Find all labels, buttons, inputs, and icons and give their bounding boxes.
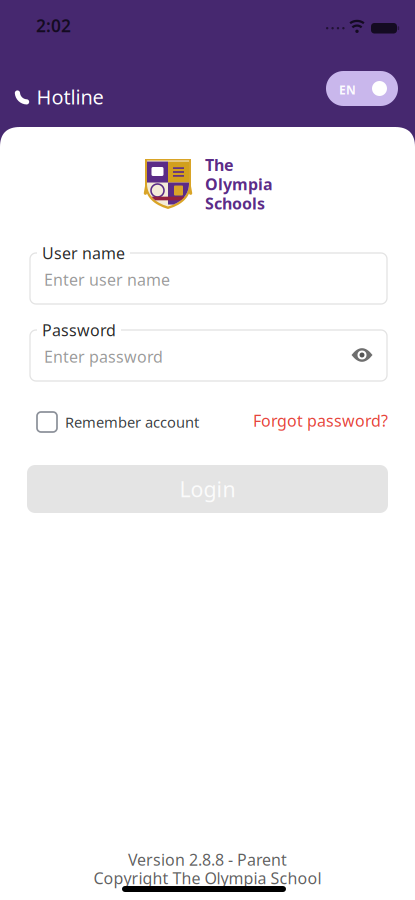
staticText: Remember account [65, 412, 199, 432]
button[interactable]: Show password [350, 345, 374, 365]
staticText: EN [339, 82, 356, 98]
staticText: Forgot password? [253, 410, 388, 431]
staticText: Schools [205, 193, 265, 214]
staticText: Hotline [36, 83, 103, 110]
staticText: 2:02 [36, 14, 71, 37]
staticText: Copyright The Olympia School [93, 867, 321, 889]
button[interactable]: Forgot password? [253, 410, 388, 431]
staticText: Enter user name [44, 269, 170, 290]
button[interactable]: Hotline [14, 83, 103, 110]
staticText: Login [179, 475, 235, 503]
staticText: Version 2.8.8 - Parent [128, 849, 287, 870]
button[interactable]: Switch language [326, 71, 398, 106]
staticText: User name [42, 242, 125, 264]
button[interactable]: Remember account [37, 412, 199, 432]
staticText: Enter password [44, 346, 163, 367]
staticText: Password [42, 319, 116, 341]
staticText: Olympia [205, 173, 273, 195]
staticText: The [205, 154, 234, 175]
